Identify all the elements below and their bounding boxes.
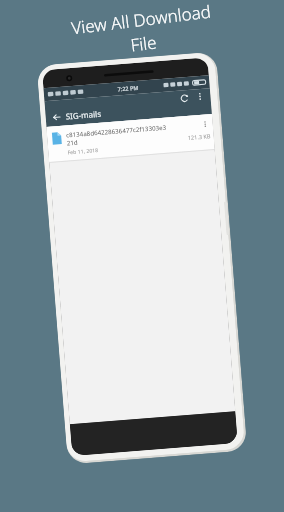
button[interactable]: More options: [193, 89, 207, 103]
staticText: View All Download: [70, 0, 212, 39]
staticText: 7:22 PM: [117, 84, 139, 92]
staticText: c8134a8d64228636477c2f13303e3: [66, 123, 167, 139]
staticText: SIG-mails: [65, 108, 102, 121]
button[interactable]: Refresh: [177, 91, 191, 105]
staticText: 21d: [66, 138, 78, 146]
button[interactable]: File options: [200, 119, 210, 129]
staticText: File: [129, 30, 158, 56]
button[interactable]: c8134a8d64228636477c2f13303e3: [46, 114, 215, 162]
button[interactable]: Back: [49, 110, 63, 124]
staticText: 121.3 KB: [187, 132, 211, 142]
staticText: Feb 11, 2018: [67, 146, 99, 155]
